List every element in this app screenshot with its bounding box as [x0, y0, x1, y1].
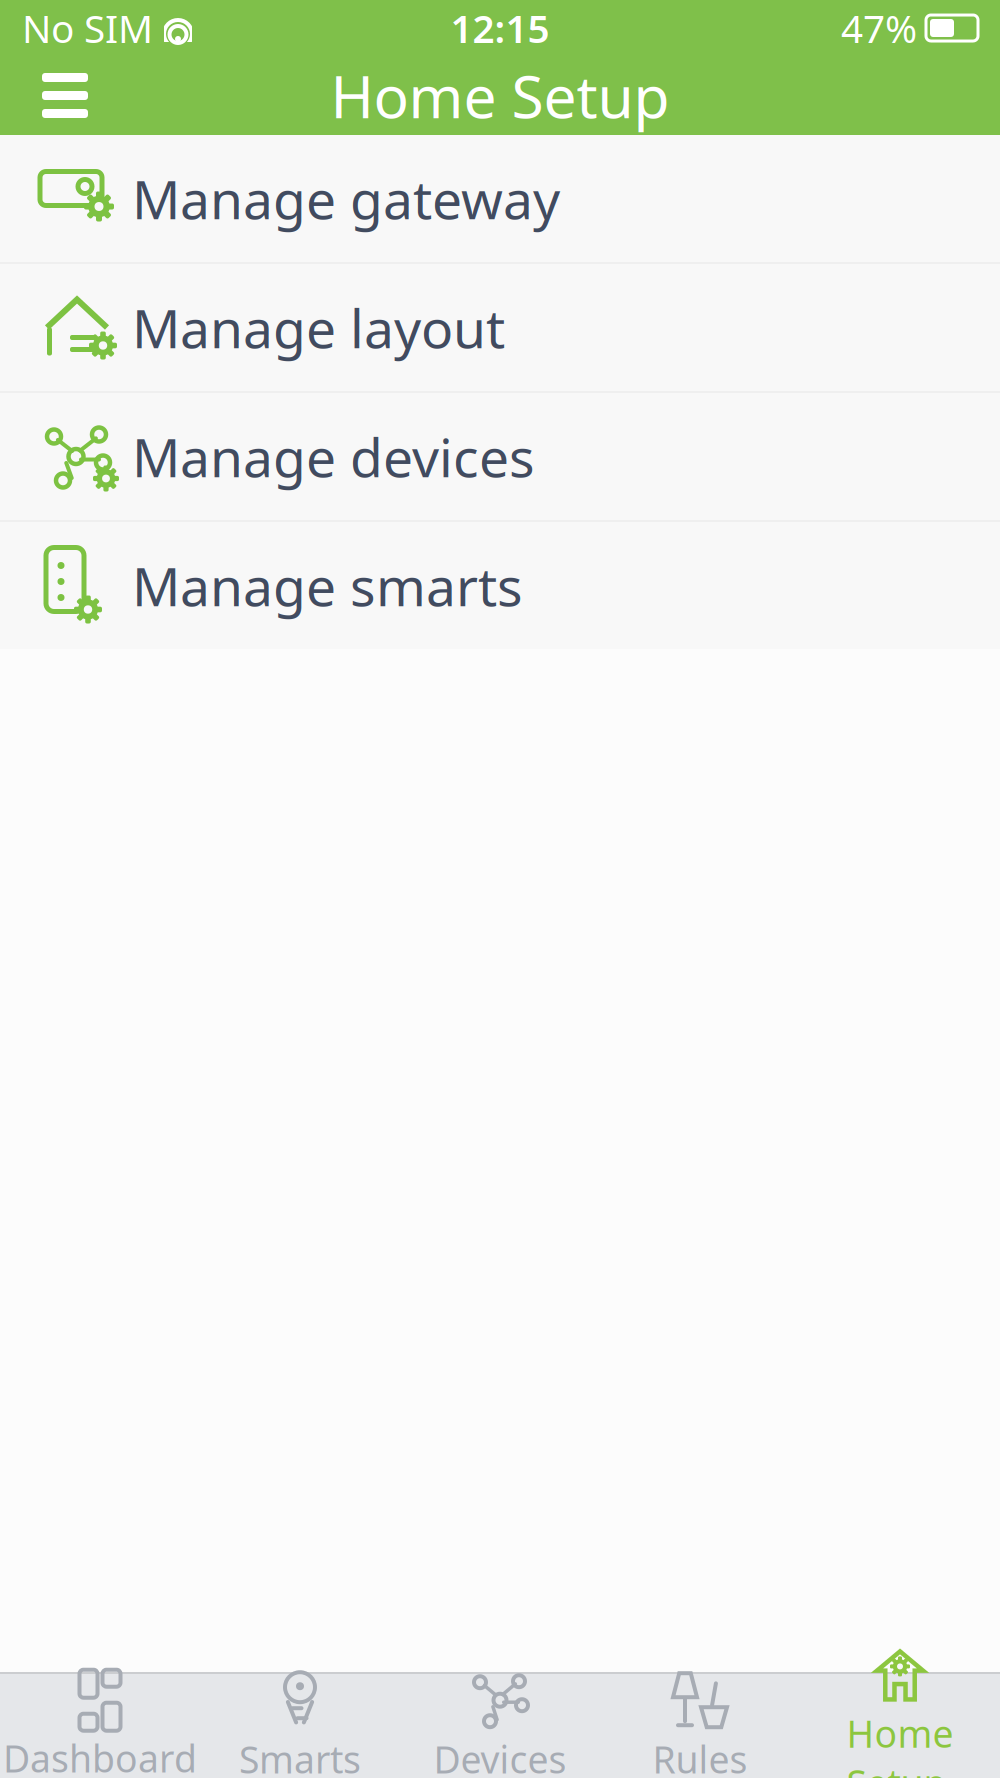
staticText: No SIM: [22, 2, 153, 54]
staticText: 12:15: [450, 2, 549, 54]
staticText: Home Setup: [846, 1708, 953, 1778]
button[interactable]: Dashboard: [0, 1682, 200, 1774]
button[interactable]: Manage devices: [0, 393, 1000, 520]
button[interactable]: Menu: [22, 56, 108, 134]
button[interactable]: Manage smarts: [0, 522, 1000, 649]
button[interactable]: Devices: [400, 1682, 600, 1774]
staticText: Dashboard: [3, 1733, 197, 1778]
button[interactable]: Rules: [600, 1682, 800, 1774]
staticText: Manage devices: [132, 421, 535, 492]
staticText: Home Setup: [330, 56, 669, 134]
staticText: Devices: [433, 1734, 566, 1778]
staticText: 47%: [841, 2, 917, 54]
staticText: Manage gateway: [132, 163, 560, 234]
button[interactable]: Smarts: [200, 1682, 400, 1774]
staticText: Manage smarts: [132, 550, 523, 621]
staticText: Smarts: [239, 1734, 361, 1778]
staticText: Manage layout: [132, 292, 505, 363]
staticText: Rules: [652, 1734, 747, 1778]
button[interactable]: Home Setup: [800, 1682, 1000, 1774]
button[interactable]: Manage gateway: [0, 135, 1000, 262]
button[interactable]: Manage layout: [0, 264, 1000, 391]
